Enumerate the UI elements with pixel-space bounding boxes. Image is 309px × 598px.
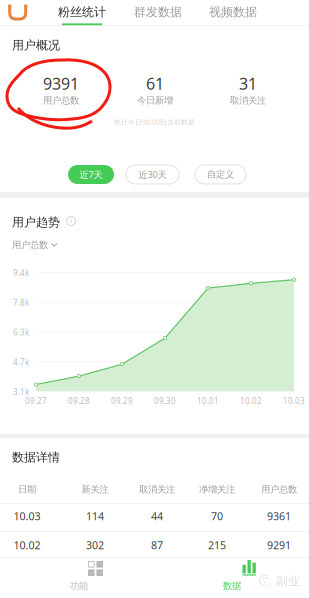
- staticText: 副业: [276, 574, 300, 589]
- button[interactable]: 用户总数: [12, 239, 66, 251]
- staticText: 10.02: [240, 396, 262, 406]
- staticText: 新关注: [81, 484, 108, 495]
- staticText: 09.29: [111, 396, 133, 406]
- staticText: 114: [86, 509, 104, 523]
- staticText: 用户总数: [12, 239, 48, 251]
- staticText: 功能: [70, 580, 88, 592]
- staticText: 9391: [43, 73, 79, 94]
- staticText: 用户趋势: [12, 215, 60, 230]
- staticText: 4.7k: [13, 357, 29, 367]
- staticText: 视频数据: [209, 5, 257, 19]
- staticText: 9361: [267, 509, 291, 523]
- staticText: 44: [151, 509, 163, 523]
- staticText: 09.28: [68, 396, 90, 406]
- staticText: 取消关注: [139, 484, 175, 495]
- staticText: 用户概况: [12, 38, 60, 53]
- staticText: 215: [208, 538, 226, 552]
- button[interactable]: 数据: [207, 557, 257, 597]
- staticText: 61: [146, 73, 164, 94]
- staticText: 净增关注: [199, 484, 235, 495]
- staticText: 7.8k: [13, 297, 29, 308]
- staticText: 87: [151, 538, 163, 552]
- staticText: 今日新增: [137, 95, 173, 106]
- staticText: 302: [86, 538, 104, 552]
- staticText: 09.30: [154, 396, 176, 406]
- button[interactable]: 近30天: [126, 165, 179, 184]
- staticText: 近30天: [138, 168, 166, 181]
- staticText: 粉丝统计: [58, 5, 106, 19]
- staticText: 10.02: [13, 538, 40, 552]
- staticText: 群发数据: [134, 5, 182, 19]
- staticText: 9.4k: [13, 267, 29, 278]
- staticText: 31: [239, 73, 257, 94]
- staticText: 3.1k: [13, 386, 29, 397]
- staticText: 自定义: [207, 169, 234, 180]
- staticText: 用户总数: [261, 484, 297, 495]
- staticText: 统计今日00:00到当前数据: [114, 118, 195, 126]
- staticText: 数据: [223, 580, 241, 592]
- staticText: 近7天: [79, 168, 102, 181]
- button[interactable]: 自定义: [195, 165, 246, 184]
- staticText: 6.3k: [13, 327, 29, 338]
- button[interactable]: 粉丝统计: [55, 0, 109, 26]
- staticText: 10.03: [13, 509, 40, 523]
- staticText: 取消关注: [230, 95, 266, 106]
- staticText: 70: [211, 509, 223, 523]
- button[interactable]: 群发数据: [131, 0, 185, 26]
- staticText: 用户总数: [43, 95, 79, 106]
- button[interactable]: 功能: [54, 557, 104, 597]
- button[interactable]: 视频数据: [206, 0, 260, 26]
- staticText: 9291: [267, 538, 291, 552]
- staticText: 日期: [18, 484, 36, 495]
- staticText: 09.27: [25, 396, 47, 406]
- staticText: 10.01: [197, 396, 219, 406]
- staticText: 数据详情: [12, 450, 60, 465]
- staticText: 10.03: [283, 396, 305, 406]
- button[interactable]: 近7天: [68, 165, 114, 184]
